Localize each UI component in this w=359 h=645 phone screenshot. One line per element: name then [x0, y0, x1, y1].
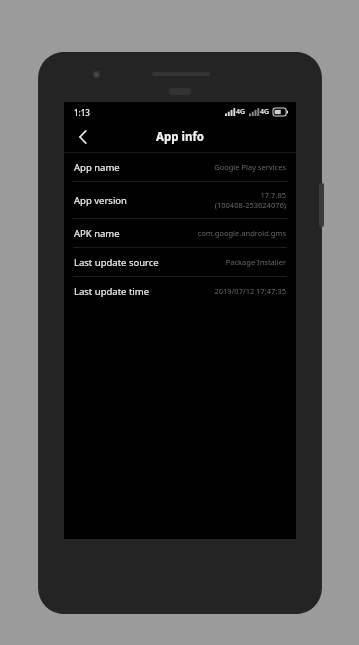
- button[interactable]: App name: [64, 153, 296, 181]
- staticText: App version: [74, 194, 127, 207]
- staticText: Last update time: [74, 285, 150, 298]
- staticText: 1:13: [74, 107, 90, 118]
- staticText: App info: [156, 129, 205, 145]
- staticText: (100408-253624076): [214, 200, 286, 210]
- button[interactable]: APK name: [64, 219, 296, 247]
- staticText: 17.7.85: [260, 190, 286, 200]
- staticText: 4G: [236, 107, 246, 117]
- button[interactable]: Last update time: [64, 277, 296, 305]
- staticText: 2019/07/12 17:47:35: [214, 286, 286, 296]
- staticText: Last update source: [74, 256, 159, 269]
- button[interactable]: Back: [70, 124, 96, 150]
- staticText: 4G: [260, 107, 270, 117]
- staticText: App name: [74, 161, 120, 174]
- staticText: Package Installer: [225, 257, 286, 267]
- staticText: com.google.android.gms: [197, 228, 286, 238]
- staticText: APK name: [74, 227, 120, 240]
- button[interactable]: App version: [64, 182, 296, 218]
- staticText: Google Play services: [214, 162, 286, 172]
- button[interactable]: Last update source: [64, 248, 296, 276]
